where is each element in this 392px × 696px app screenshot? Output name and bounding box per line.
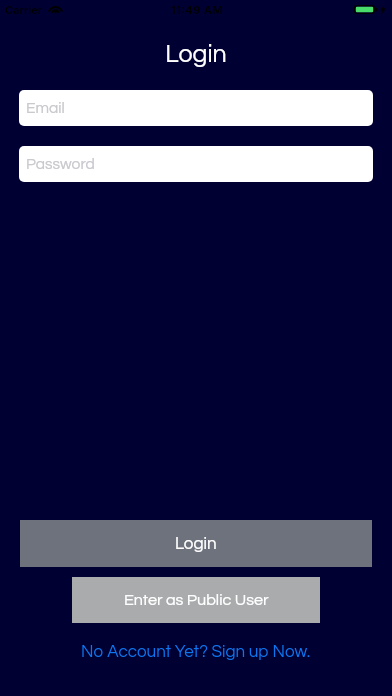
staticText: Enter as Public User xyxy=(124,592,269,609)
staticText: Carrier xyxy=(5,3,43,16)
staticText: Email xyxy=(26,100,65,116)
other: Battery xyxy=(354,5,375,14)
button[interactable]: Login xyxy=(20,520,372,567)
other: Charging xyxy=(380,5,386,14)
staticText: Login xyxy=(175,535,217,553)
button[interactable]: No Account Yet? Sign up Now. xyxy=(0,639,392,665)
staticText: 11:49 AM xyxy=(171,3,224,16)
staticText: Login xyxy=(165,41,227,67)
button[interactable]: Password xyxy=(19,146,373,182)
other: Wi-Fi xyxy=(48,5,63,14)
button[interactable]: Enter as Public User xyxy=(72,577,320,623)
button[interactable]: Email xyxy=(19,90,373,126)
staticText: Password xyxy=(26,156,95,172)
staticText: No Account Yet? Sign up Now. xyxy=(81,643,311,661)
